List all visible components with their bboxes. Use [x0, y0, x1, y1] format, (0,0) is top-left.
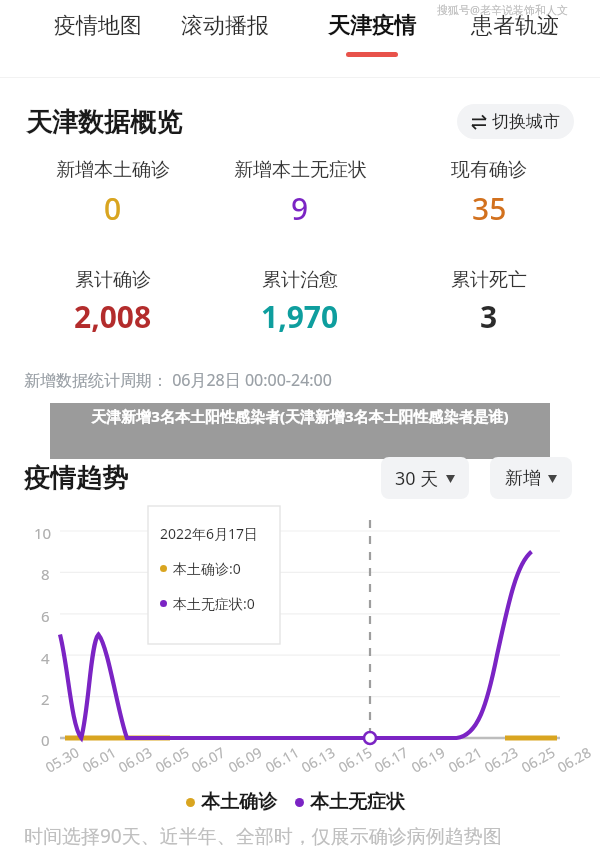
button[interactable]: 患者轨迹	[460, 12, 570, 66]
button[interactable]: 累计确诊	[18, 268, 208, 337]
staticText: 06.13	[298, 742, 338, 777]
staticText: 本土确诊	[201, 790, 277, 814]
staticText: 4	[41, 648, 50, 668]
staticText: 6	[41, 606, 50, 626]
staticText: 06.07	[188, 742, 228, 777]
staticText: 累计死亡	[451, 268, 527, 292]
staticText: 3	[480, 296, 498, 337]
staticText: 06.11	[262, 742, 302, 777]
button[interactable]: 新增本土确诊	[18, 158, 208, 229]
staticText: 0	[104, 188, 122, 229]
staticText: 本土确诊:0	[173, 559, 241, 578]
staticText: 0	[41, 730, 50, 750]
staticText: 2,008	[74, 296, 152, 337]
button[interactable]: 30 天	[381, 457, 469, 499]
staticText: 滚动播报	[181, 12, 269, 40]
staticText: 35	[472, 188, 507, 229]
staticText: 新增数据统计周期： 06月28日 00:00-24:00	[24, 369, 332, 391]
staticText: 患者轨迹	[471, 12, 559, 40]
staticText: 天津疫情	[328, 12, 416, 40]
staticText: 05.30	[42, 742, 82, 777]
staticText: 累计确诊	[75, 268, 151, 292]
staticText: 新增	[505, 467, 541, 490]
staticText: 9	[291, 188, 309, 229]
staticText: 新增本土无症状	[234, 158, 367, 182]
staticText: 2	[41, 689, 50, 709]
staticText: 天津新增3名本土阳性感染者(天津新增3名本土阳性感染者是谁)	[91, 406, 509, 426]
staticText: 06.25	[518, 742, 558, 777]
staticText: 2022年6月17日	[160, 524, 259, 543]
staticText: 06.19	[408, 742, 448, 777]
staticText: 06.28	[554, 742, 594, 777]
button[interactable]: 本土确诊	[186, 790, 405, 814]
staticText: 10	[34, 523, 52, 543]
staticText: 时间选择90天、近半年、全部时，仅展示确诊病例趋势图	[24, 823, 502, 849]
staticText: 本土无症状:0	[173, 594, 255, 613]
staticText: 新增本土确诊	[56, 158, 170, 182]
staticText: 06.03	[115, 742, 155, 777]
button[interactable]: 天津新增3名本土阳性感染者(天津新增3名本土阳性感染者是谁)	[50, 403, 550, 459]
staticText: 搜狐号@老辛说装饰和人文	[437, 2, 568, 17]
staticText: 疫情趋势	[24, 462, 128, 495]
staticText: 现有确诊	[451, 158, 527, 182]
button[interactable]: 现有确诊	[394, 158, 584, 229]
button[interactable]: 新增	[490, 457, 572, 499]
button[interactable]: 累计治愈	[205, 268, 395, 337]
staticText: 06.05	[152, 742, 192, 777]
staticText: 切换城市	[492, 111, 560, 132]
staticText: 1,970	[261, 296, 339, 337]
button[interactable]: 切换城市	[457, 104, 574, 139]
button[interactable]: 新增本土无症状	[205, 158, 395, 229]
staticText: 8	[41, 564, 50, 584]
staticText: 06.23	[481, 742, 521, 777]
staticText: 06.01	[79, 742, 119, 777]
staticText: 30 天	[395, 466, 439, 491]
staticText: 本土无症状	[310, 790, 405, 814]
button[interactable]: 天津疫情	[317, 12, 427, 66]
button[interactable]: 滚动播报	[170, 12, 280, 66]
staticText: 06.09	[225, 742, 265, 777]
staticText: 累计治愈	[262, 268, 338, 292]
staticText: 06.17	[371, 742, 411, 777]
staticText: 06.21	[445, 742, 485, 777]
staticText: 疫情地图	[54, 12, 142, 40]
staticText: 06.15	[335, 742, 375, 777]
button[interactable]: 累计死亡	[394, 268, 584, 337]
button[interactable]: 疫情地图	[43, 12, 153, 66]
staticText: 天津数据概览	[26, 106, 182, 139]
button[interactable]: 2022年6月17日	[148, 506, 280, 644]
